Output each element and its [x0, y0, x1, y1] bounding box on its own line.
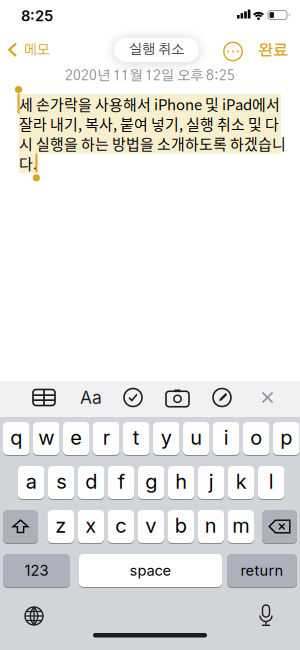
staticText: 완료: [258, 43, 288, 59]
button[interactable]: 123: [3, 554, 70, 588]
staticText: 다.: [19, 152, 37, 174]
button[interactable]: k: [228, 466, 254, 500]
button[interactable]: [262, 510, 297, 544]
staticText: p: [280, 426, 292, 449]
button[interactable]: s: [48, 466, 74, 500]
staticText: s: [56, 470, 66, 493]
staticText: 세 손가락을 사용해서 iPhone 및 iPad에서: [19, 93, 280, 115]
staticText: 2020년 11월 12일 오후 8:25: [65, 69, 235, 83]
button[interactable]: [259, 605, 273, 626]
button[interactable]: b: [167, 510, 194, 544]
staticText: g: [145, 470, 157, 493]
staticText: l: [269, 470, 274, 493]
staticText: 실행 취소: [129, 43, 184, 57]
button[interactable]: 메모: [8, 38, 49, 62]
button[interactable]: i: [213, 422, 239, 456]
button[interactable]: o: [243, 422, 269, 456]
button[interactable]: n: [197, 510, 224, 544]
button[interactable]: 실행 취소: [114, 38, 199, 62]
staticText: b: [175, 514, 187, 537]
staticText: h: [175, 470, 187, 493]
button[interactable]: [223, 41, 243, 61]
button[interactable]: [262, 392, 273, 403]
button[interactable]: z: [47, 510, 74, 544]
staticText: u: [190, 426, 202, 449]
button[interactable]: Aa: [79, 388, 103, 406]
staticText: o: [250, 426, 262, 449]
staticText: space: [129, 562, 171, 579]
staticText: v: [145, 514, 156, 537]
button[interactable]: e: [63, 422, 89, 456]
button[interactable]: g: [138, 466, 164, 500]
staticText: 123: [24, 562, 48, 579]
staticText: f: [118, 470, 125, 493]
button[interactable]: m: [227, 510, 254, 544]
button[interactable]: [166, 389, 189, 406]
button[interactable]: h: [168, 466, 194, 500]
button[interactable]: y: [153, 422, 179, 456]
button[interactable]: c: [107, 510, 134, 544]
staticText: r: [103, 426, 110, 449]
button[interactable]: f: [108, 466, 134, 500]
button[interactable]: [212, 387, 232, 407]
button[interactable]: [33, 389, 55, 405]
staticText: m: [232, 514, 249, 537]
staticText: j: [209, 470, 214, 493]
button[interactable]: d: [78, 466, 104, 500]
button[interactable]: t: [123, 422, 149, 456]
staticText: n: [205, 514, 217, 537]
staticText: x: [85, 514, 96, 537]
staticText: i: [224, 426, 229, 449]
button[interactable]: q: [3, 422, 29, 456]
staticText: z: [55, 514, 66, 537]
button[interactable]: u: [183, 422, 209, 456]
staticText: w: [38, 426, 54, 449]
staticText: return: [240, 562, 283, 579]
staticText: e: [70, 426, 82, 449]
button[interactable]: l: [258, 466, 284, 500]
button[interactable]: [123, 387, 143, 407]
staticText: d: [85, 470, 97, 493]
staticText: Aa: [80, 387, 102, 408]
staticText: c: [115, 514, 126, 537]
button[interactable]: space: [79, 554, 222, 588]
button[interactable]: [24, 606, 44, 626]
button[interactable]: [3, 510, 38, 544]
button[interactable]: p: [273, 422, 299, 456]
button[interactable]: 완료: [258, 41, 288, 61]
staticText: y: [161, 426, 172, 449]
button[interactable]: a: [18, 466, 44, 500]
button[interactable]: j: [198, 466, 224, 500]
staticText: q: [10, 426, 22, 449]
staticText: 시 실행을 하는 방법을 소개하도록 하겠습니: [19, 132, 286, 154]
button[interactable]: v: [137, 510, 164, 544]
staticText: 잘라 내기, 복사, 붙여 넣기, 실행 취소 및 다: [19, 113, 279, 134]
button[interactable]: return: [227, 554, 297, 588]
staticText: t: [133, 426, 140, 449]
staticText: a: [26, 470, 37, 493]
staticText: 8:25: [21, 7, 53, 25]
button[interactable]: x: [77, 510, 104, 544]
button[interactable]: w: [33, 422, 59, 456]
staticText: k: [236, 470, 247, 493]
button[interactable]: r: [93, 422, 119, 456]
staticText: 메모: [23, 43, 49, 57]
